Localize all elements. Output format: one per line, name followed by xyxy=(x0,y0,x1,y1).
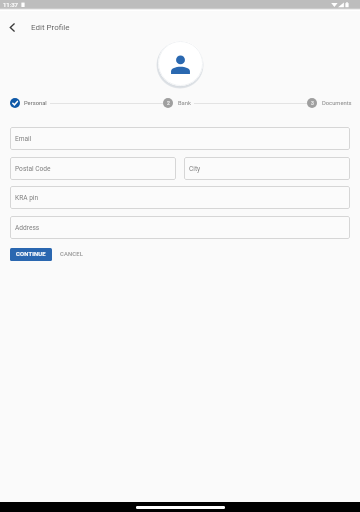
staticText: 2 xyxy=(167,100,170,106)
staticText: CONTINUE xyxy=(16,251,46,258)
button[interactable]: KRA pin xyxy=(10,186,350,209)
staticText: Email xyxy=(15,135,32,143)
button[interactable]: Back xyxy=(0,16,22,38)
staticText: Personal xyxy=(24,100,47,107)
button[interactable]: Profile photo xyxy=(158,41,203,86)
staticText: Postal Code xyxy=(15,165,51,173)
other: Personal step completed xyxy=(10,98,20,108)
button[interactable]: Email xyxy=(10,127,350,150)
button[interactable]: Postal Code xyxy=(10,157,176,180)
staticText: Edit Profile xyxy=(31,23,70,32)
button[interactable]: 3 xyxy=(307,98,352,108)
button[interactable]: City xyxy=(184,157,350,180)
button[interactable]: CONTINUE xyxy=(10,248,52,261)
staticText: Address xyxy=(15,224,40,232)
staticText: CANCEL xyxy=(60,251,84,258)
button[interactable]: 2 xyxy=(163,98,191,108)
button[interactable]: CANCEL xyxy=(58,248,86,261)
staticText: City xyxy=(189,165,201,173)
staticText: Documents xyxy=(322,100,352,107)
button[interactable]: Personal step completed xyxy=(10,98,47,108)
staticText: 3 xyxy=(311,100,314,106)
staticText: KRA pin xyxy=(15,194,39,202)
staticText: Bank xyxy=(178,100,191,107)
button[interactable]: Address xyxy=(10,216,350,239)
staticText: 11:37 xyxy=(3,1,18,8)
